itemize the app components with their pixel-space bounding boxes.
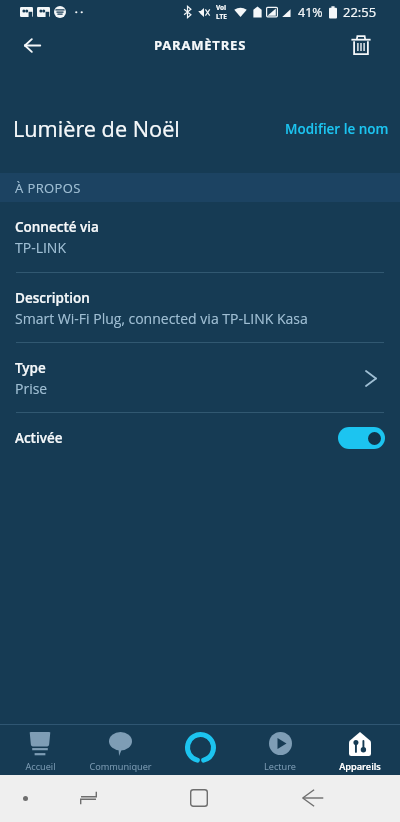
button[interactable]: Recent apps — [66, 787, 110, 809]
staticText: Description — [15, 289, 90, 307]
button[interactable]: Home — [177, 787, 221, 809]
button[interactable]: Activée — [0, 413, 400, 463]
staticText: Communiquer — [89, 760, 152, 773]
button[interactable]: Alexa — [160, 724, 240, 775]
staticText: Activée — [15, 429, 63, 447]
button[interactable]: Type — [0, 343, 400, 413]
staticText: Accueil — [25, 760, 56, 773]
staticText: Connecté via — [15, 218, 99, 236]
button[interactable]: Lecture — [240, 724, 320, 775]
staticText: Lumière de Noël — [13, 114, 180, 144]
staticText: 41% — [298, 4, 323, 21]
button[interactable]: Description — [0, 273, 400, 343]
staticText: À PROPOS — [15, 179, 81, 197]
staticText: VoI — [216, 3, 227, 12]
button[interactable]: Accueil — [0, 724, 80, 775]
button[interactable]: Delete — [338, 24, 384, 66]
staticText: Smart Wi-Fi Plug, connected via TP-LINK … — [15, 309, 308, 328]
button[interactable]: Communiquer — [80, 724, 160, 775]
staticText: PARAMÈTRES — [154, 36, 247, 54]
button[interactable]: Modifier le nom — [270, 110, 400, 148]
staticText: Prise — [15, 379, 48, 398]
staticText: Appareils — [339, 760, 381, 773]
staticText: LTE — [216, 12, 227, 21]
button[interactable]: Connecté via — [0, 202, 400, 273]
button[interactable]: Back — [291, 787, 335, 809]
staticText: Lecture — [264, 760, 296, 773]
staticText: Modifier le nom — [285, 120, 389, 138]
staticText: 22:55 — [343, 3, 377, 21]
staticText: TP-LINK — [15, 238, 66, 257]
button[interactable]: Appareils — [320, 724, 400, 775]
button[interactable]: Back — [9, 24, 55, 66]
staticText: Type — [15, 359, 46, 377]
